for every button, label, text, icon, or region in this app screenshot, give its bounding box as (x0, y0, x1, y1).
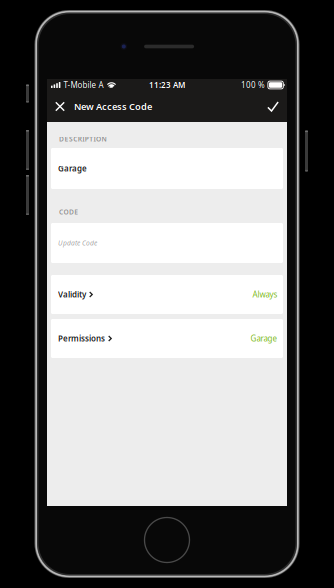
staticText: New Access Code (74, 100, 152, 113)
staticText: Always (252, 289, 277, 300)
button[interactable]: Close (49, 91, 71, 122)
staticText: Garage (250, 333, 277, 344)
button[interactable]: Permissions (51, 319, 283, 358)
staticText: Validity (58, 289, 86, 300)
staticText: CODE (59, 208, 78, 216)
staticText: DESCRIPTION (59, 135, 106, 143)
staticText: Permissions (58, 333, 105, 344)
button[interactable]: Save (262, 91, 284, 122)
button[interactable]: Validity (51, 275, 283, 314)
staticText: Garage (58, 163, 87, 174)
staticText: Update Code (58, 239, 97, 247)
staticText: 100 % (241, 80, 265, 90)
staticText: T-Mobile A (63, 80, 103, 90)
staticText: 11:23 AM (149, 80, 185, 90)
